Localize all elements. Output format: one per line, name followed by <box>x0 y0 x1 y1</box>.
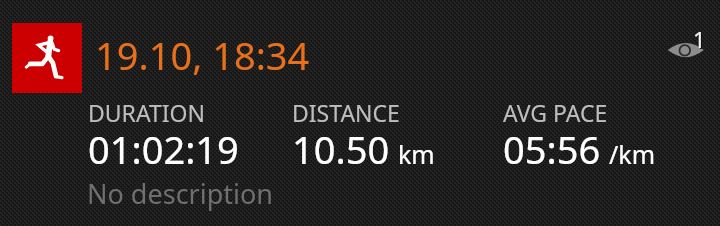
staticText: 19.10, 18:34 <box>95 29 310 81</box>
staticText: DISTANCE <box>292 97 400 128</box>
staticText: No description <box>87 175 274 212</box>
staticText: AVG PACE <box>503 97 608 128</box>
staticText: 10.50 <box>292 123 390 175</box>
staticText: 05:56 <box>503 123 601 175</box>
staticText: 1 <box>694 25 707 55</box>
staticText: 1 <box>693 24 706 54</box>
staticText: DURATION <box>88 97 206 128</box>
staticText: 01:02:19 <box>88 123 239 175</box>
staticText: /km <box>609 137 656 171</box>
button[interactable]: Views <box>660 22 712 66</box>
button[interactable]: Running activity <box>12 23 82 93</box>
staticText: km <box>398 137 435 171</box>
